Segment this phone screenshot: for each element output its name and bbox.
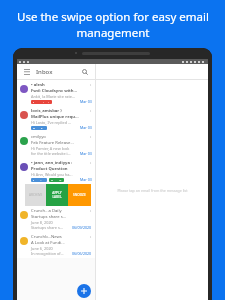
staticText: Mar 03 [80,99,92,104]
staticText: Ankit, la Marie site rate... [31,94,75,99]
staticText: Startups share s... [31,214,67,220]
staticText: › [90,134,92,139]
staticText: A Look at Fundi... [31,240,65,246]
staticText: 06/09/2020 [72,225,92,230]
button[interactable]: Crunchb...News [17,232,95,258]
staticText: Please tap an email from the message lis… [117,188,188,193]
button[interactable]: Menu [22,67,31,76]
staticText: ARCHIVE [29,193,43,197]
staticText: Product Question [31,166,68,172]
staticText: June 8, 2020 Startups share s... [31,220,63,230]
staticText: SNOOZE [73,193,86,197]
staticText: Crunchb...News [31,234,62,240]
staticText: › [90,234,92,239]
staticText: › [90,160,92,165]
button[interactable]: Compose [77,284,91,298]
button[interactable]: APPLY LABEL [46,184,68,206]
staticText: Crunch...a Daily [31,208,62,214]
staticText: • alesh [31,82,45,88]
staticText: Feb Feature Release... [31,140,74,146]
button[interactable]: • alesh [17,80,95,106]
staticText: Fwd: Cloudsync with... [31,88,78,94]
staticText: lovis_amisbar ) [31,108,62,114]
staticText: Use the swipe option for easy email mana… [17,9,209,40]
staticText: • jann, ann_indiyya : [31,160,73,166]
staticText: June 6, 2020 In recognition of... [31,246,64,256]
button[interactable]: Search [80,67,90,77]
button[interactable]: Crunch...a Daily [17,206,95,232]
staticText: MailPlus unique requ... [31,114,79,120]
staticText: Hi Pamier, A new look for the title webs… [31,146,71,156]
staticText: Hi Ann, Would you ha... [31,172,73,177]
staticText: Inbox [36,68,53,76]
staticText: cmilyyo [31,134,46,140]
staticText: › [90,208,92,213]
staticText: Inquiry [33,179,45,181]
staticText: Case 5 [51,179,62,181]
button[interactable]: ARCHIVE [25,184,46,206]
staticText: › [90,82,92,87]
staticText: 06/06/2020 [72,251,92,256]
staticText: Hi Lasto, I've replied ... [31,120,72,125]
button[interactable]: lovis_amisbar ) [17,106,95,132]
button[interactable]: cmilyyo [17,132,95,158]
staticText: › [90,108,92,113]
staticText: Mar 03 [80,177,92,182]
staticText: Mar 03 [80,125,92,130]
button[interactable]: SNOOZE [68,184,91,206]
staticText: Important [33,101,50,103]
staticText: APPLY LABEL [52,191,62,199]
staticText: Mar 03 [80,151,92,156]
button[interactable]: • jann, ann_indiyya : [17,158,95,184]
staticText: Results [33,127,45,129]
